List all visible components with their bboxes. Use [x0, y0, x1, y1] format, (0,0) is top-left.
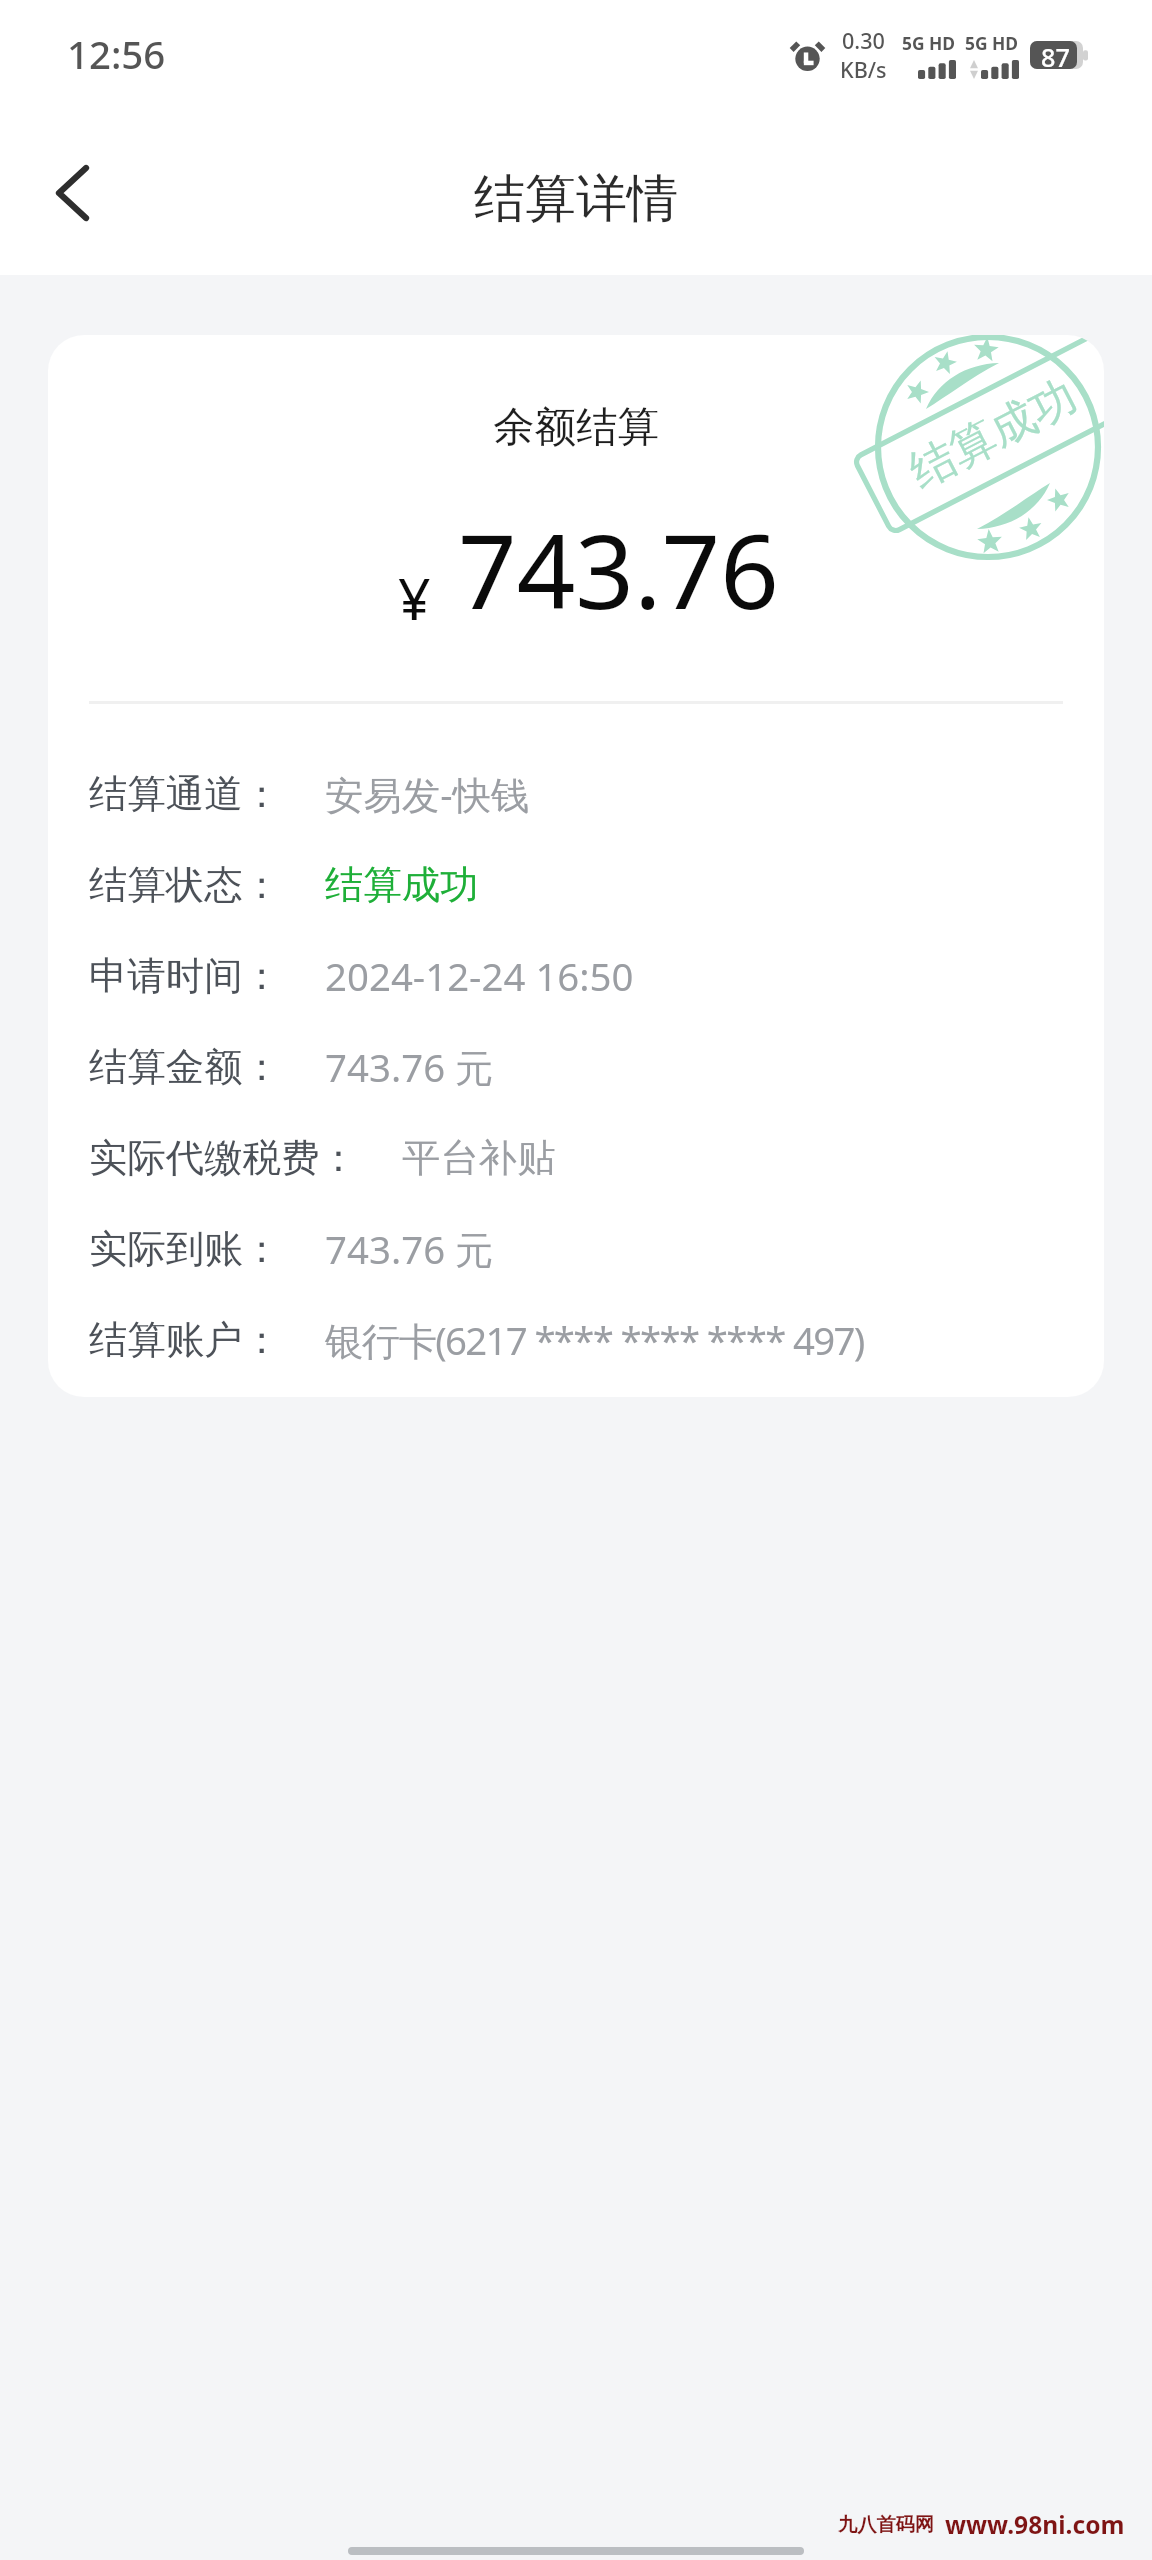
- staticText: 平台补贴: [402, 1134, 556, 1182]
- staticText: 结算状态：: [89, 861, 281, 909]
- staticText: 12:56: [67, 28, 166, 80]
- staticText: 结算通道：: [89, 770, 281, 818]
- staticText: 5G HD: [902, 31, 956, 55]
- staticText: 87: [1041, 40, 1070, 68]
- staticText: KB/s: [840, 55, 887, 84]
- staticText: 5G HD: [965, 31, 1019, 55]
- staticText: 0.30: [842, 26, 885, 55]
- staticText: 结算成功: [325, 861, 479, 909]
- staticText: 银行卡(6217 **** **** **** 497): [325, 1314, 864, 1366]
- staticText: 实际代缴税费：: [89, 1134, 358, 1182]
- staticText: 结算成功: [900, 368, 1086, 501]
- staticText: 2024-12-24 16:50: [325, 950, 634, 1002]
- staticText: ¥: [398, 559, 431, 637]
- staticText: 结算金额：: [89, 1043, 281, 1091]
- button[interactable]: Back: [24, 110, 120, 275]
- staticText: 余额结算: [493, 401, 659, 453]
- staticText: 743.76 元: [325, 1041, 494, 1093]
- staticText: 结算账户：: [89, 1316, 281, 1364]
- staticText: 实际到账：: [89, 1225, 281, 1273]
- staticText: 安易发-快钱: [325, 768, 530, 820]
- staticText: 743.76: [458, 499, 779, 639]
- staticText: www.98ni.com: [945, 2508, 1125, 2542]
- staticText: 结算详情: [474, 167, 678, 231]
- staticText: 九八首码网: [838, 2513, 934, 2537]
- staticText: 申请时间：: [89, 952, 281, 1000]
- staticText: 743.76 元: [325, 1223, 494, 1275]
